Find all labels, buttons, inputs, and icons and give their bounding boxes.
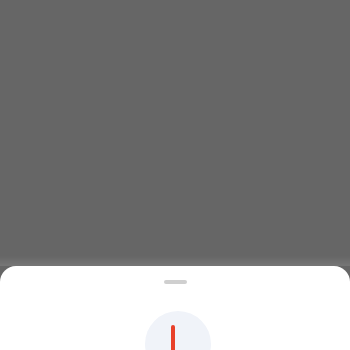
button: Drag handle <box>0 266 350 350</box>
button[interactable]: Drag handle <box>160 275 190 289</box>
other: Recording level indicator <box>171 325 175 350</box>
